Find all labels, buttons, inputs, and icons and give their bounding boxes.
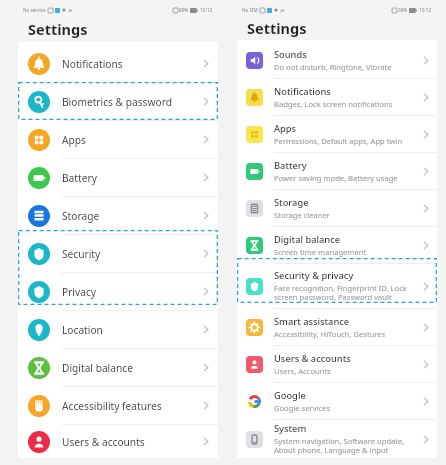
staticText: Badges, Lock screen notifications [274, 99, 393, 109]
button[interactable]: Google [237, 383, 437, 419]
button[interactable]: Digital balance [18, 349, 218, 386]
staticText: Google [274, 389, 306, 402]
staticText: No service [23, 7, 46, 13]
button[interactable]: Notifications [18, 45, 218, 82]
button[interactable]: Security [18, 235, 218, 272]
staticText: Privacy [62, 285, 96, 299]
staticText: Do not disturb, Ringtone, Vibrate [274, 62, 392, 72]
button[interactable]: Battery [237, 153, 437, 189]
button[interactable]: Apps [18, 121, 218, 158]
staticText: Google services [274, 403, 331, 413]
staticText: Accessibility, HiTouch, Gestures [274, 329, 386, 339]
button[interactable]: Smart assistance [237, 309, 437, 345]
staticText: Storage [62, 209, 100, 223]
staticText: System [274, 422, 307, 435]
button[interactable]: Privacy [18, 273, 218, 310]
staticText: Digital balance [274, 233, 341, 246]
button[interactable]: Sounds [237, 42, 437, 78]
button[interactable]: Storage [237, 190, 437, 226]
staticText: 89% [179, 7, 189, 13]
staticText: Power saving mode, Battery usage [274, 173, 398, 183]
staticText: Permissions, Default apps, App twin [274, 136, 403, 146]
staticText: Sounds [274, 48, 307, 61]
staticText: Apps [62, 133, 86, 147]
staticText: Digital balance [62, 361, 133, 375]
staticText: Accessibility features [62, 399, 162, 413]
staticText: Notifications [274, 85, 331, 98]
staticText: Biometrics & password [62, 95, 172, 109]
staticText: System navigation, Software update, Abou… [274, 436, 418, 456]
button[interactable]: Apps [237, 116, 437, 152]
staticText: Security [62, 247, 101, 261]
staticText: 10:12 [200, 7, 213, 14]
staticText: Settings [28, 19, 88, 39]
staticText: Settings [247, 18, 307, 38]
button[interactable]: Notifications [237, 79, 437, 115]
staticText: Battery [274, 159, 307, 172]
button[interactable]: Digital balance [237, 227, 437, 263]
staticText: 10:12 [419, 7, 432, 14]
button[interactable]: Storage [18, 197, 218, 234]
staticText: Screen time management [274, 247, 367, 257]
button[interactable]: System [237, 420, 437, 458]
staticText: Storage cleaner [274, 210, 330, 220]
staticText: 36% [398, 7, 408, 13]
button[interactable]: Users & accounts [237, 346, 437, 382]
button[interactable]: Users & accounts [18, 425, 218, 458]
staticText: ≫ [68, 8, 73, 13]
button[interactable]: Biometrics & password [18, 83, 218, 120]
staticText: Users & accounts [274, 352, 351, 365]
staticText: Location [62, 323, 103, 337]
staticText: Apps [274, 122, 297, 135]
button[interactable]: Security & privacy [237, 264, 437, 308]
staticText: Face recognition, Fingerprint ID, Lock s… [274, 283, 418, 303]
staticText: No SIM [242, 7, 258, 13]
staticText: Storage [274, 196, 309, 209]
button[interactable]: Battery [18, 159, 218, 196]
staticText: ≫ [280, 8, 285, 13]
staticText: Security & privacy [274, 269, 354, 282]
staticText: Notifications [62, 57, 123, 71]
staticText: Users & accounts [62, 435, 145, 449]
button[interactable]: Accessibility features [18, 387, 218, 424]
staticText: Smart assistance [274, 315, 350, 328]
button[interactable]: Location [18, 311, 218, 348]
staticText: Users, Accounts [274, 366, 331, 376]
staticText: Battery [62, 171, 97, 185]
